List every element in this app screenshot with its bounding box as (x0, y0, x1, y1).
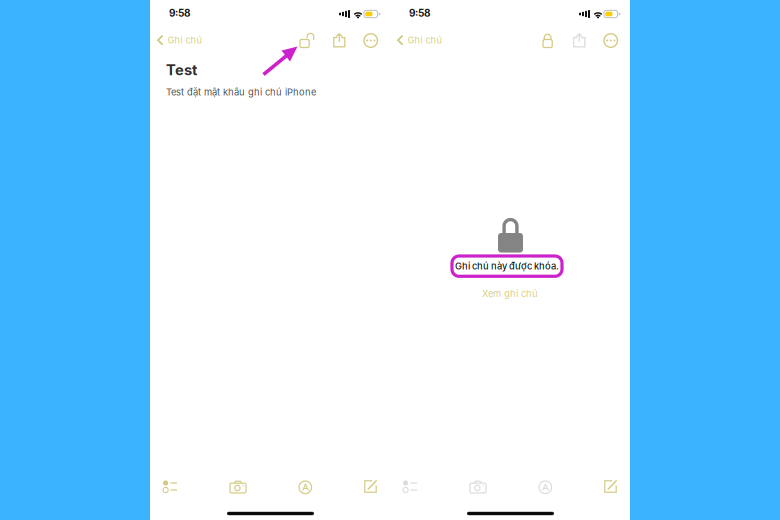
button[interactable]: Share (569, 29, 589, 51)
button[interactable]: Note locked (539, 29, 562, 51)
staticText: Ghi chú này được khóa. (455, 260, 559, 272)
staticText: 9:58 (169, 7, 191, 19)
button[interactable]: Share (329, 29, 349, 51)
button[interactable]: Markup (533, 475, 558, 500)
staticText: Ghi chú (407, 34, 442, 46)
staticText: 9:58 (409, 7, 431, 19)
button[interactable]: Camera (224, 474, 252, 499)
staticText: Test (166, 61, 197, 79)
staticText: Test đặt mật khẩu ghi chú iPhone (166, 86, 316, 98)
button[interactable]: Markup (293, 475, 318, 500)
button[interactable]: More options (600, 30, 621, 51)
button[interactable]: New note (358, 474, 383, 499)
button[interactable]: Ghi chú (157, 30, 202, 50)
button[interactable]: New note (598, 474, 623, 499)
button[interactable]: Camera (464, 474, 492, 499)
button[interactable]: Checklist (157, 474, 183, 499)
button[interactable]: Unlock note (296, 29, 319, 51)
button[interactable]: More options (360, 30, 381, 51)
button[interactable]: Ghi chú (397, 30, 442, 50)
button[interactable]: Xem ghi chú (476, 285, 544, 302)
button[interactable]: Checklist (397, 474, 423, 499)
staticText: Ghi chú (167, 34, 202, 46)
staticText: Xem ghi chú (482, 288, 538, 299)
